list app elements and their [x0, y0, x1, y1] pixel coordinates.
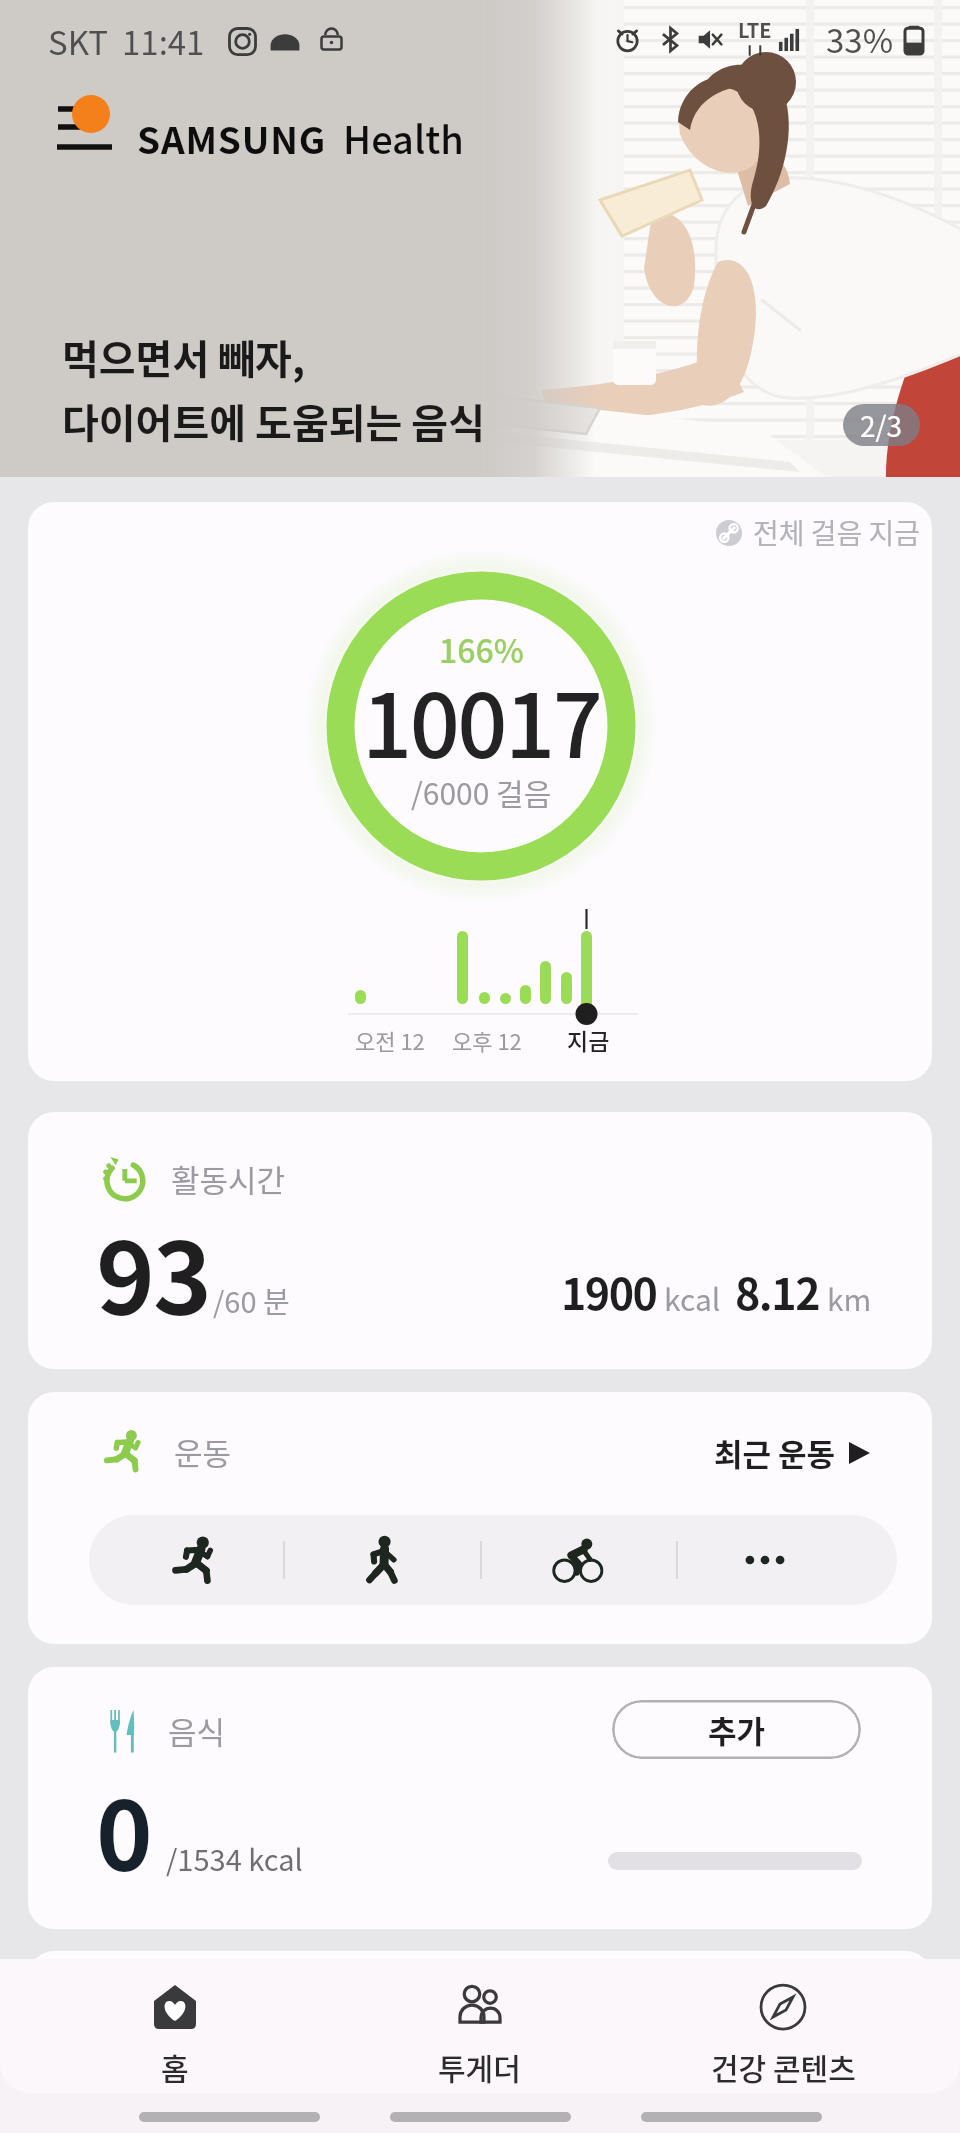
- staticText: 활동시간: [171, 1156, 286, 1201]
- staticText: 홈: [161, 2045, 189, 2088]
- staticText: 166%: [439, 626, 524, 672]
- button[interactable]: 최근 운동: [714, 1430, 870, 1475]
- button[interactable]: 전체 걸음 지금: [28, 502, 932, 1081]
- staticText: 93: [96, 1199, 210, 1344]
- staticText: /60 분: [213, 1279, 290, 1321]
- button[interactable]: 음식: [28, 1667, 932, 1929]
- button[interactable]: 추가: [612, 1700, 861, 1759]
- staticText: Health: [343, 110, 464, 165]
- button[interactable]: Running: [111, 1515, 287, 1605]
- staticText: 33%: [826, 15, 894, 63]
- staticText: 전체 걸음 지금: [753, 512, 921, 553]
- staticText: km: [827, 1276, 872, 1319]
- button[interactable]: 활동시간: [28, 1112, 932, 1369]
- button[interactable]: More exercises: [677, 1515, 853, 1605]
- staticText: 추가: [708, 1707, 766, 1752]
- staticText: 1900: [561, 1260, 657, 1322]
- staticText: /6000 걸음: [411, 770, 552, 813]
- staticText: 지금: [567, 1023, 610, 1056]
- staticText: 10017: [362, 656, 601, 783]
- button[interactable]: Menu: [46, 86, 124, 162]
- staticText: 11:41: [122, 17, 205, 65]
- staticText: LTE: [738, 15, 772, 44]
- staticText: 0: [96, 1760, 153, 1899]
- staticText: 먹으면서 빼자,: [62, 328, 305, 386]
- staticText: kcal: [664, 1276, 721, 1319]
- button[interactable]: 투게더: [327, 1959, 631, 2093]
- staticText: 음식: [168, 1708, 226, 1753]
- staticText: /1534 kcal: [166, 1837, 303, 1879]
- staticText: 2/3: [860, 405, 903, 446]
- staticText: 건강 콘텐츠: [711, 2045, 856, 2088]
- staticText: 운동: [174, 1429, 232, 1474]
- staticText: 8.12: [735, 1260, 820, 1322]
- staticText: SAMSUNG: [137, 111, 326, 165]
- staticText: 오후 12: [452, 1024, 522, 1056]
- button[interactable]: 홈: [23, 1959, 327, 2093]
- button[interactable]: 건강 콘텐츠: [631, 1959, 935, 2093]
- staticText: 다이어트에 도움되는 음식: [62, 392, 485, 450]
- staticText: 투게더: [438, 2045, 521, 2088]
- staticText: 최근 운동: [714, 1430, 836, 1475]
- button[interactable]: Cycling: [493, 1515, 669, 1605]
- button[interactable]: Walking: [298, 1515, 474, 1605]
- staticText: SKT: [48, 17, 109, 65]
- staticText: 오전 12: [355, 1024, 425, 1056]
- button[interactable]: 운동: [28, 1392, 932, 1644]
